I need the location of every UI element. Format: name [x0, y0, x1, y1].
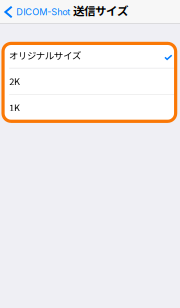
staticText: 1K: [9, 101, 20, 114]
button[interactable]: オリジナルサイズ: [4, 42, 175, 68]
button[interactable]: 2K: [4, 69, 175, 94]
button[interactable]: 1K: [4, 95, 175, 120]
staticText: オリジナルサイズ: [9, 48, 81, 62]
button[interactable]: DICOM-Shot: [0, 0, 70, 24]
staticText: 送信サイズ: [73, 2, 128, 18]
staticText: DICOM-Shot: [16, 6, 70, 18]
staticText: 2K: [9, 74, 20, 88]
